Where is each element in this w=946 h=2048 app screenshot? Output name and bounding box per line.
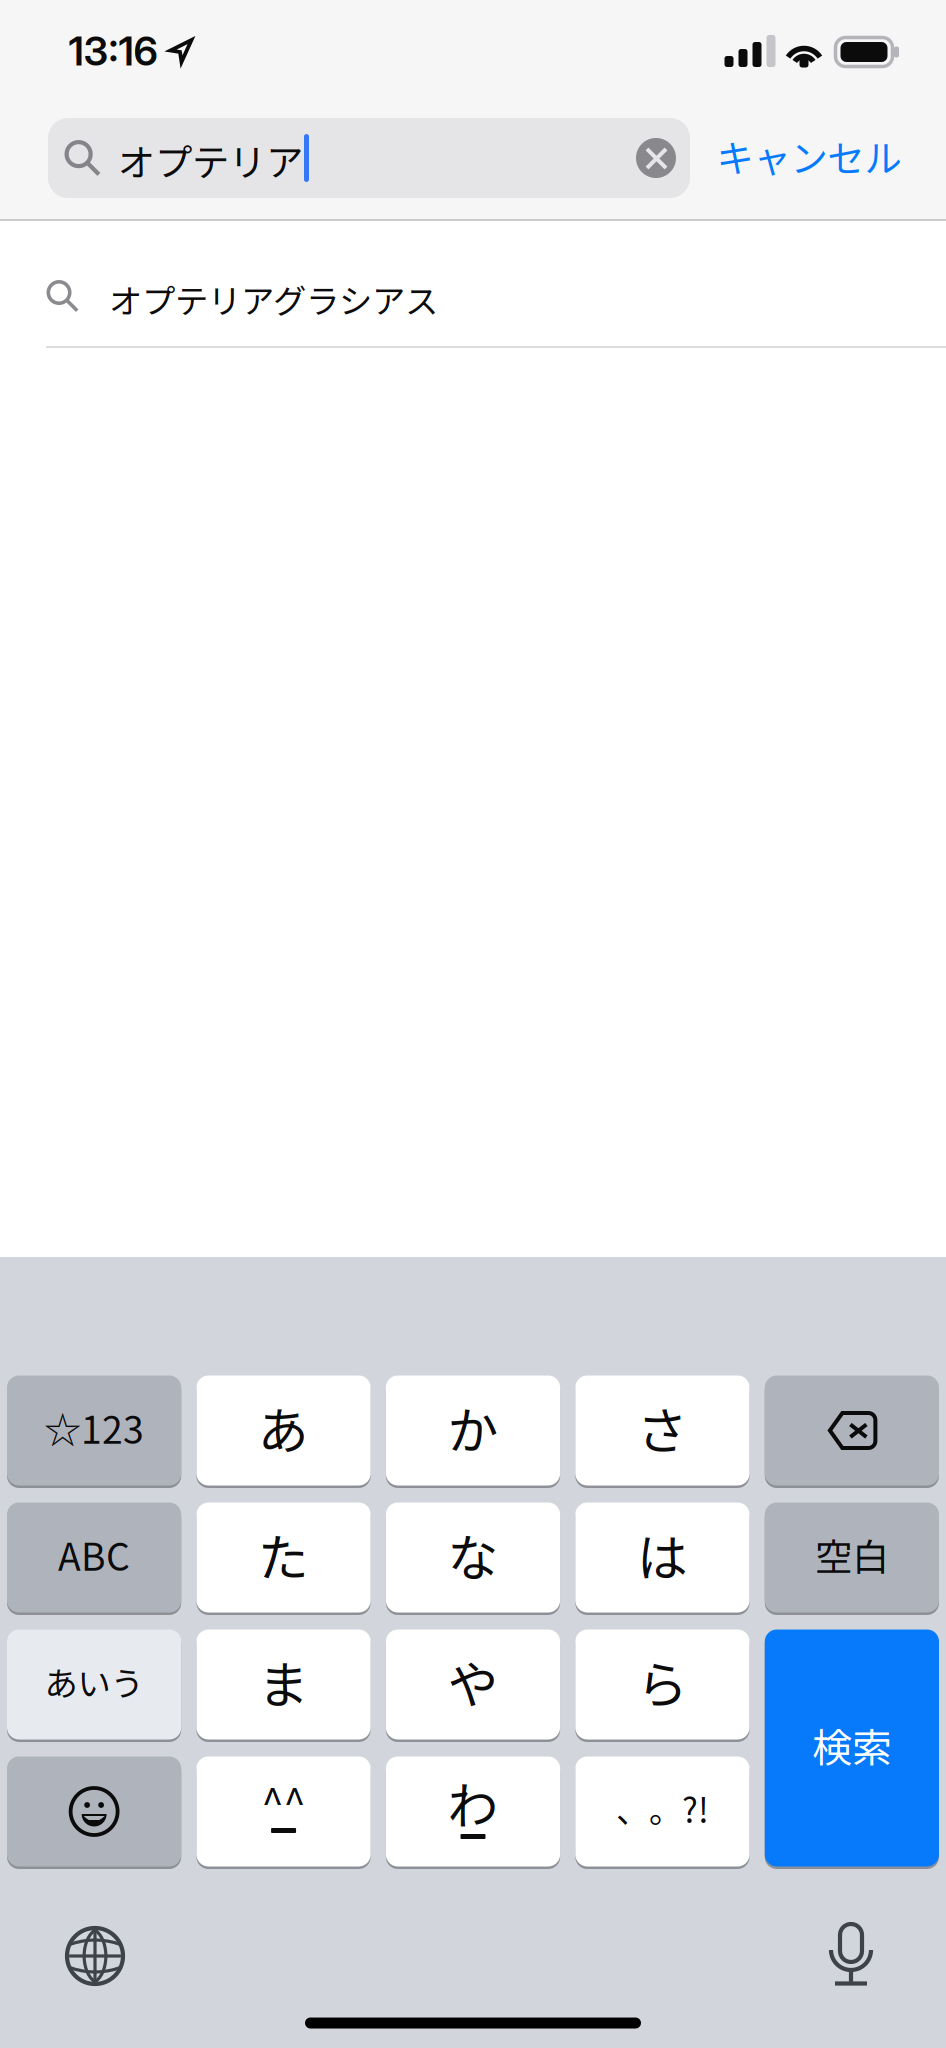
button[interactable]: た — [196, 1499, 371, 1615]
button[interactable]: キャンセル — [689, 116, 929, 196]
button[interactable]: わ — [386, 1753, 560, 1869]
button[interactable]: ま — [196, 1626, 371, 1742]
staticText: 、。?! — [616, 1784, 709, 1833]
button[interactable]: な — [386, 1499, 560, 1615]
staticText: は — [637, 1518, 688, 1591]
staticText: わ — [447, 1766, 498, 1839]
button[interactable]: あいう — [7, 1626, 181, 1742]
button[interactable]: Next keyboard — [45, 1906, 145, 2006]
staticText: さ — [637, 1391, 688, 1464]
button[interactable]: は — [575, 1499, 749, 1615]
staticText: な — [447, 1518, 498, 1591]
button[interactable]: Dictation — [801, 1904, 901, 2004]
staticText: オプテリア — [118, 133, 303, 187]
staticText: あいう — [45, 1657, 144, 1706]
staticText: や — [447, 1645, 498, 1718]
button[interactable]: Delete — [765, 1372, 939, 1488]
button[interactable]: オプテリア — [48, 118, 690, 198]
button[interactable]: 空白 — [765, 1499, 939, 1615]
button[interactable]: や — [386, 1626, 560, 1742]
staticText: オプテリアグラシアス — [109, 275, 438, 323]
button[interactable]: Emoji — [7, 1753, 181, 1869]
button[interactable]: ら — [575, 1626, 749, 1742]
staticText: ABC — [58, 1527, 130, 1582]
staticText: ら — [637, 1645, 688, 1718]
staticText: 13:16 — [68, 27, 157, 75]
button[interactable]: ☆123 — [7, 1372, 181, 1488]
staticText: か — [447, 1391, 498, 1464]
staticText: キャンセル — [716, 129, 901, 183]
button[interactable]: か — [386, 1372, 560, 1488]
staticText: 検索 — [812, 1716, 892, 1774]
staticText: 空白 — [815, 1527, 889, 1582]
button[interactable]: あ — [196, 1372, 371, 1488]
button[interactable]: 、。?! — [575, 1753, 749, 1869]
staticText: あ — [258, 1391, 309, 1464]
button[interactable]: さ — [575, 1372, 749, 1488]
button[interactable]: Kaomoji — [196, 1753, 371, 1869]
button[interactable]: ABC — [7, 1499, 181, 1615]
button[interactable]: オプテリアグラシアス — [0, 232, 946, 360]
staticText: ☆123 — [44, 1400, 144, 1455]
staticText: た — [258, 1518, 309, 1591]
button[interactable]: 検索 — [765, 1626, 939, 1869]
staticText: ^^ — [262, 1771, 306, 1829]
staticText: ま — [258, 1645, 309, 1718]
